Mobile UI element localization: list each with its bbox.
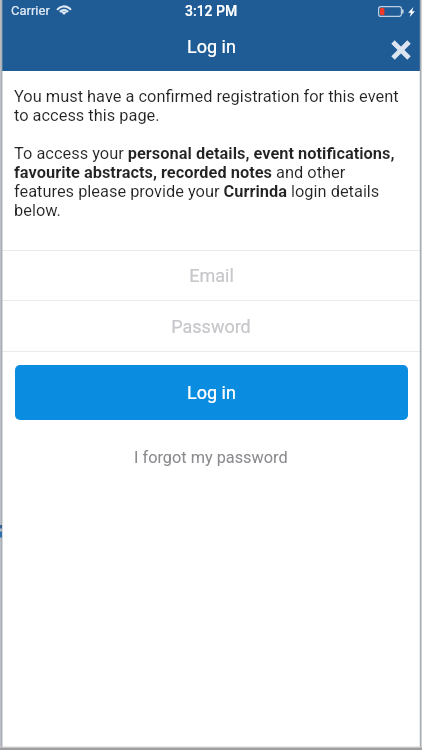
staticText: Log in [187, 36, 236, 57]
staticText: Carrier [11, 3, 50, 18]
staticText: I forgot my password [134, 448, 288, 467]
button[interactable]: Password [2, 301, 420, 351]
button[interactable]: Close [374, 25, 420, 71]
button[interactable]: I forgot my password [2, 420, 420, 497]
staticText: To access your personal details, event n… [14, 144, 408, 220]
button[interactable]: Email [2, 251, 420, 300]
staticText: 3:12 PM [185, 3, 238, 19]
staticText: Password [171, 316, 251, 337]
staticText: Email [189, 265, 234, 286]
button[interactable]: Log in [15, 365, 408, 420]
staticText: Log in [187, 382, 236, 403]
staticText: You must have a confirmed registration f… [14, 87, 408, 125]
